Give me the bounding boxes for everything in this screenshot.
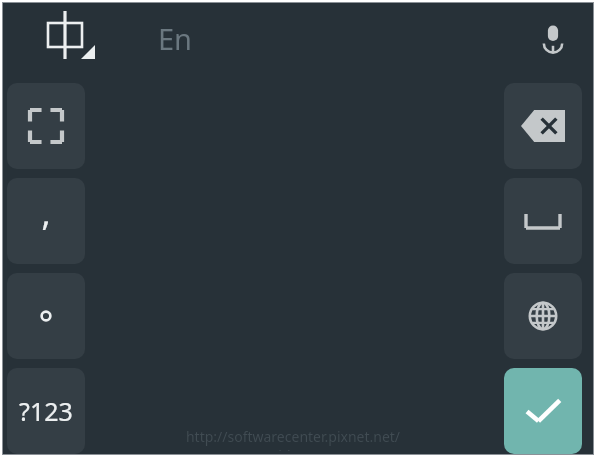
button[interactable]: Change language — [504, 273, 582, 359]
button[interactable]: Voice input — [527, 13, 579, 65]
staticText: En — [158, 19, 193, 58]
button[interactable]: ?123 — [7, 368, 85, 454]
button[interactable]: Resize keyboard — [7, 83, 85, 169]
button[interactable]: , — [7, 178, 85, 264]
button[interactable]: Period — [7, 273, 85, 359]
staticText: , — [41, 190, 51, 236]
staticText: http://softwarecenter.pixnet.net/blog — [175, 427, 411, 451]
button[interactable]: En — [158, 15, 228, 61]
button[interactable]: Enter — [504, 368, 582, 454]
button[interactable]: Backspace — [504, 83, 582, 169]
button[interactable]: Switch input language — [33, 9, 103, 67]
button[interactable]: Space — [504, 178, 582, 264]
staticText: ?123 — [19, 394, 73, 428]
